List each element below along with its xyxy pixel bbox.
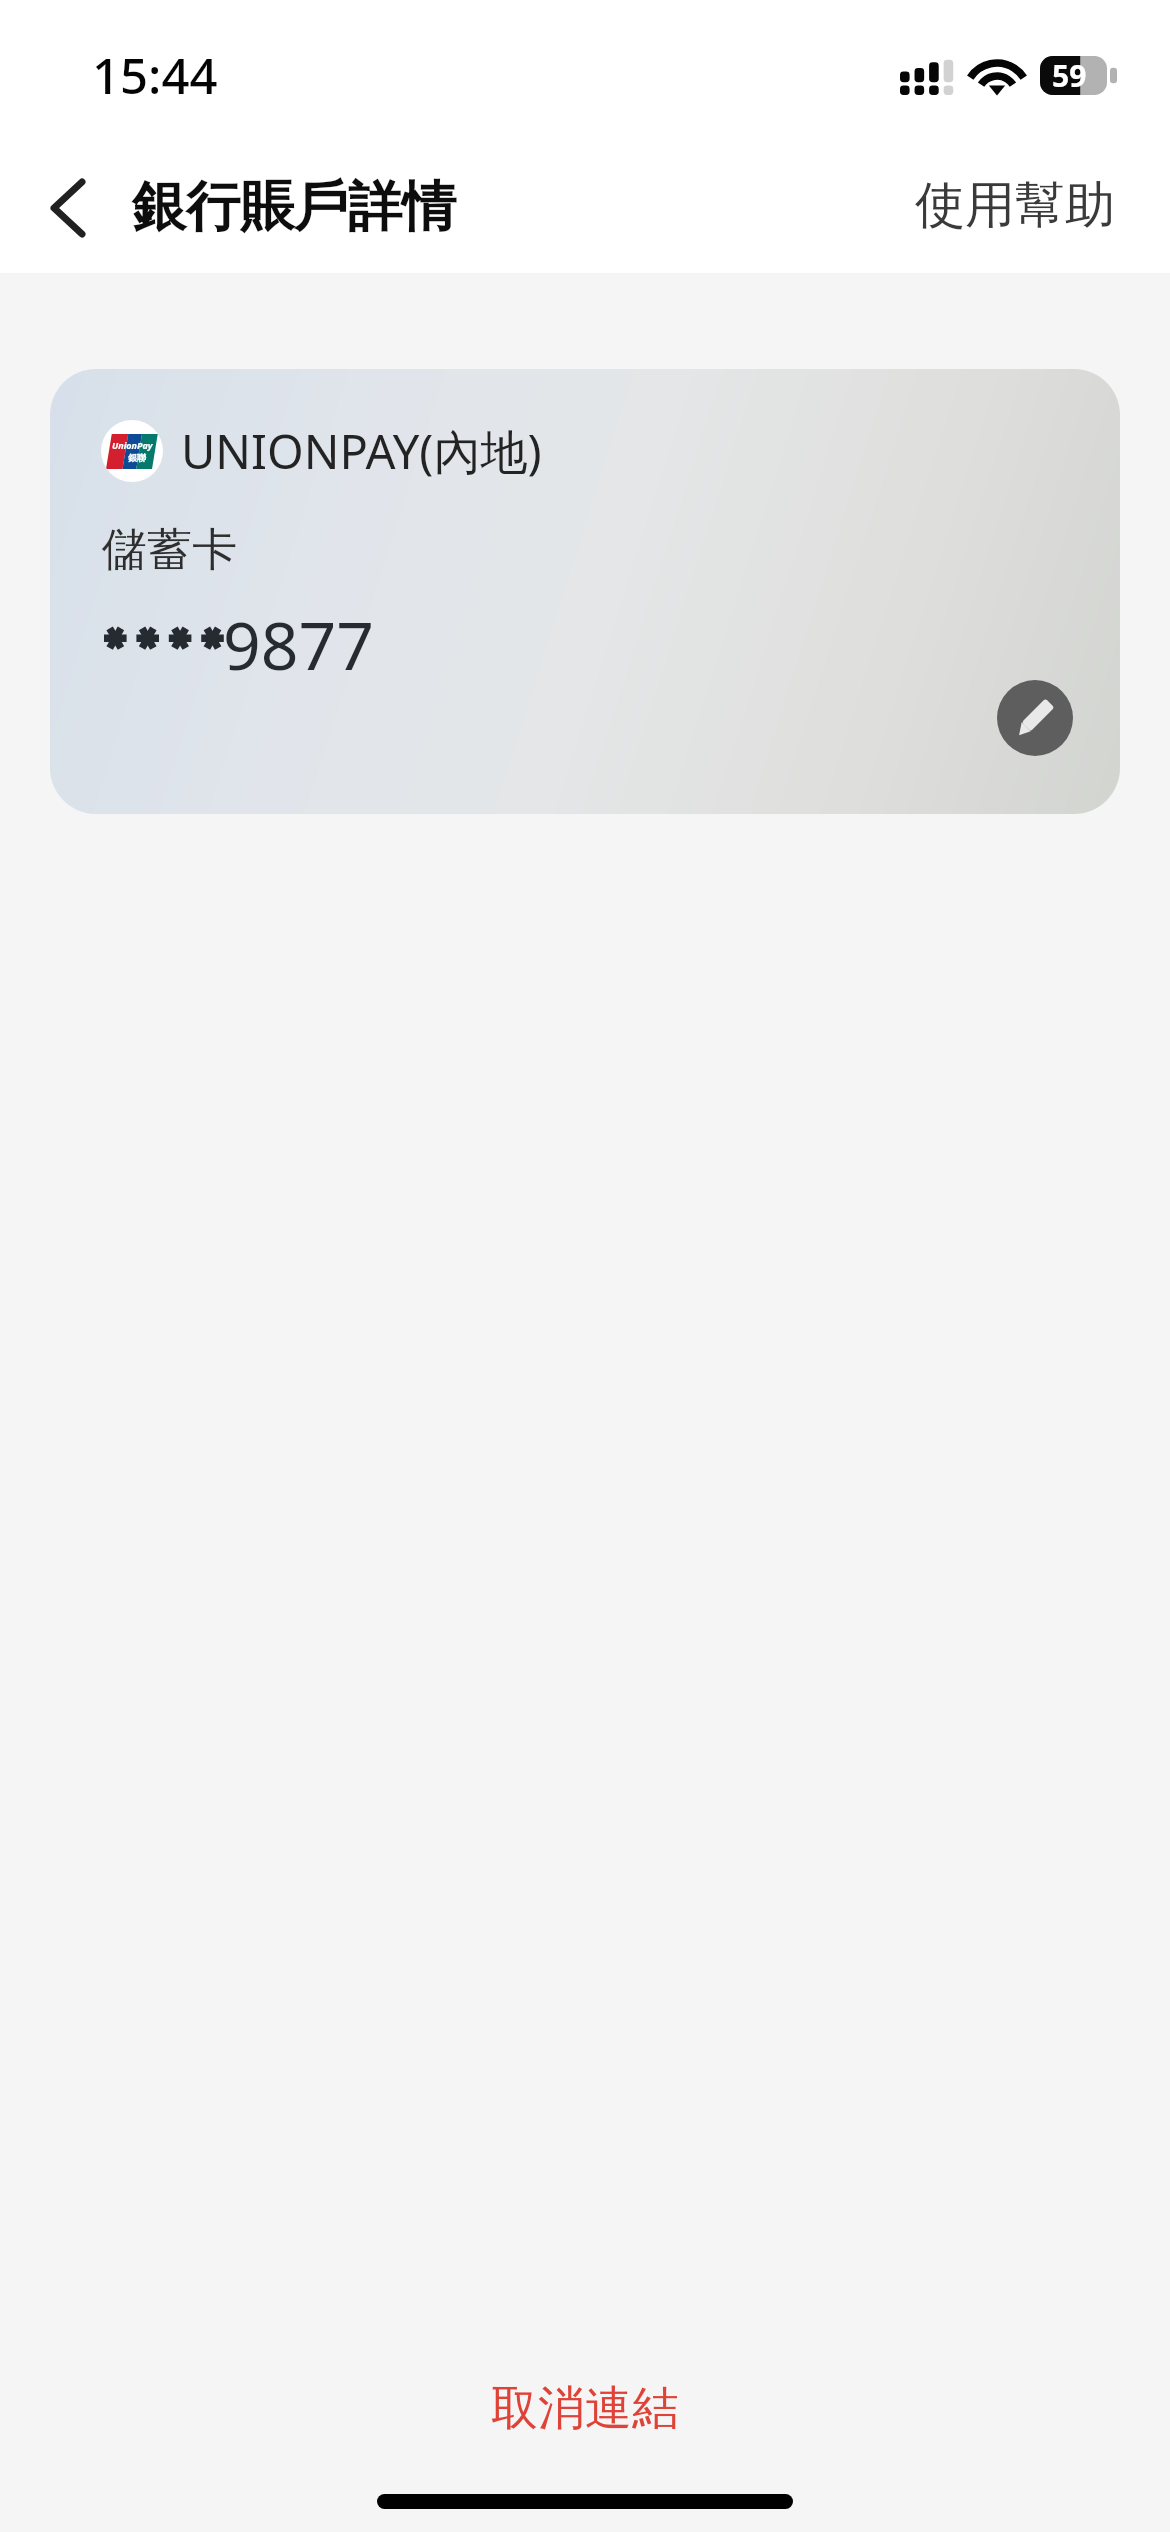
staticText: 儲蓄卡 <box>102 522 237 579</box>
staticText: 取消連結 <box>491 2379 679 2438</box>
button[interactable]: UnionPay <box>50 369 1120 814</box>
staticText: 15:44 <box>92 42 218 109</box>
staticText: 9877 <box>223 599 375 689</box>
button[interactable]: 取消連結 <box>431 2357 739 2452</box>
staticText: 59 <box>1052 55 1087 94</box>
button[interactable]: 使用幫助 <box>875 150 1170 253</box>
button[interactable]: Edit <box>997 680 1073 756</box>
staticText: 銀聯 <box>128 452 146 463</box>
staticText: UNIONPAY(內地) <box>181 419 542 483</box>
button[interactable]: Back <box>18 158 118 258</box>
staticText: 銀行賬戶詳情 <box>132 173 456 241</box>
staticText: 使用幫助 <box>915 174 1115 237</box>
staticText: UnionPay <box>112 439 153 451</box>
